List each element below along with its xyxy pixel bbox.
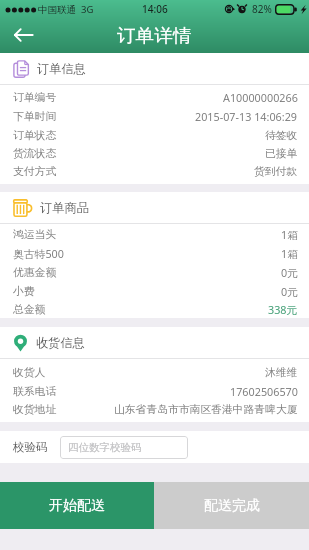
staticText: 货到付款 — [254, 165, 298, 179]
staticText: 14:06 — [142, 2, 168, 16]
staticText: 收货地址 — [13, 403, 57, 417]
staticText: 校验码 — [13, 440, 48, 454]
staticText: 山东省青岛市市南区香港中路青啤大厦 — [114, 403, 298, 417]
staticText: 订单信息 — [37, 61, 86, 76]
button[interactable]: Back — [7, 21, 39, 49]
staticText: 已接单 — [265, 147, 298, 161]
staticText: 配送完成 — [204, 497, 260, 515]
staticText: 0元 — [281, 265, 298, 280]
staticText: 沐维维 — [265, 366, 298, 380]
staticText: 奥古特500 — [13, 246, 64, 261]
staticText: 338元 — [268, 302, 298, 317]
staticText: 总金额 — [13, 303, 46, 317]
staticText: 支付方式 — [13, 165, 57, 179]
staticText: 1箱 — [281, 246, 298, 261]
staticText: 收货信息 — [36, 335, 85, 350]
staticText: 2015-07-13 14:06:29 — [195, 109, 298, 124]
staticText: 17602506570 — [230, 384, 298, 399]
staticText: 四位数字校验码 — [68, 441, 142, 454]
staticText: 货流状态 — [13, 147, 57, 161]
button[interactable]: 配送完成 — [154, 482, 309, 529]
staticText: 联系电话 — [13, 385, 57, 399]
staticText: A10000000266 — [223, 90, 298, 105]
staticText: 收货人 — [13, 366, 46, 380]
staticText: 订单详情 — [117, 24, 192, 47]
staticText: 订单编号 — [13, 91, 57, 105]
staticText: 0元 — [281, 284, 298, 299]
staticText: 订单状态 — [13, 129, 57, 143]
staticText: 小费 — [13, 285, 35, 299]
staticText: 鸿运当头 — [13, 228, 57, 242]
staticText: 开始配送 — [49, 497, 105, 515]
staticText: 优惠金额 — [13, 266, 57, 280]
button[interactable]: 四位数字校验码 — [60, 436, 188, 459]
staticText: 待签收 — [265, 129, 298, 143]
staticText: 下单时间 — [13, 110, 57, 124]
staticText: 3G — [81, 3, 94, 16]
staticText: 82% — [252, 2, 272, 16]
staticText: 订单商品 — [40, 200, 89, 215]
staticText: 中国联通 — [38, 4, 76, 16]
button[interactable]: 开始配送 — [0, 482, 154, 529]
staticText: 1箱 — [281, 227, 298, 242]
